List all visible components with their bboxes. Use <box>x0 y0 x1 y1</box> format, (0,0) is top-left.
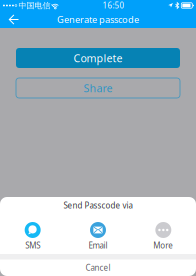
button[interactable]: Complete <box>16 48 180 68</box>
staticText: Generate passcode <box>57 13 139 26</box>
staticText: Send Passcode via <box>63 200 132 211</box>
button[interactable]: Share <box>16 78 180 98</box>
staticText: Share <box>83 81 112 95</box>
staticText: Cancel <box>85 262 110 273</box>
staticText: Complete <box>73 51 122 65</box>
button[interactable]: SMS <box>0 214 65 254</box>
staticText: SMS <box>25 240 40 251</box>
staticText: More <box>153 240 173 251</box>
button[interactable]: Cancel <box>0 259 196 276</box>
button[interactable]: Email <box>65 214 131 254</box>
staticText: Email <box>88 240 107 251</box>
staticText: 中国电信 <box>18 1 50 10</box>
button[interactable]: Back <box>0 11 28 28</box>
staticText: 16:50 <box>103 0 125 11</box>
button[interactable]: More <box>131 214 196 254</box>
